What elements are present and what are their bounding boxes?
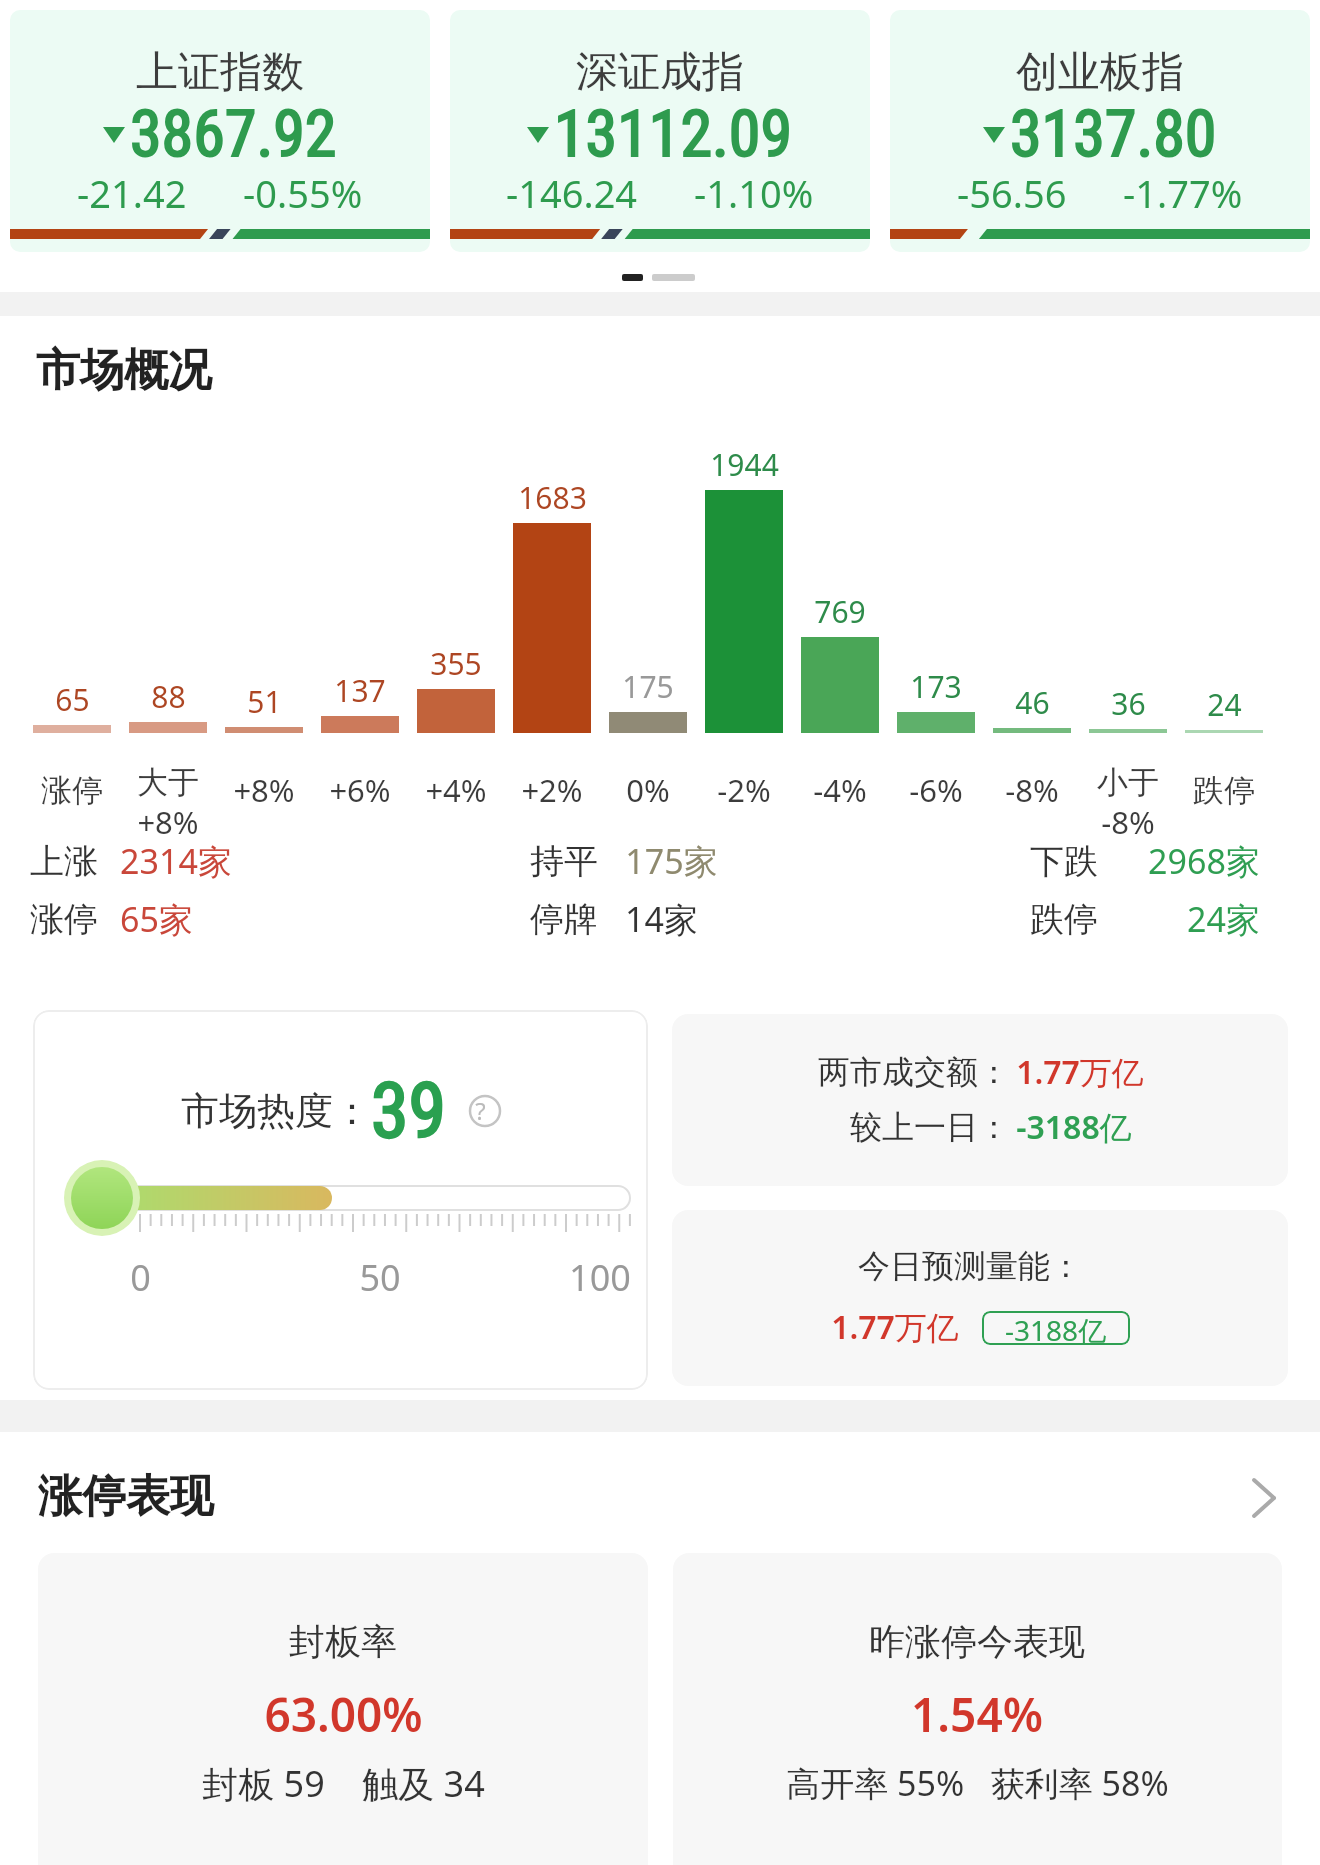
staticText: 小于 [1097,763,1159,802]
staticText: +6% [329,769,391,811]
staticText: 涨停表现 [38,1469,214,1524]
staticText: 39 [371,1066,447,1155]
staticText: 65家 [120,896,193,942]
staticText: 今日预测量能： [858,1246,1082,1286]
staticText: 较上一日： [850,1107,1010,1147]
staticText: 上涨 [30,840,98,883]
staticText: 14家 [625,896,698,942]
staticText: 上证指数 [136,46,304,99]
button[interactable] [450,10,870,252]
staticText: -3188亿 [1005,1311,1107,1345]
button[interactable] [890,10,1310,252]
staticText: 跌停 [1030,898,1098,941]
staticText: 50 [359,1253,401,1302]
staticText: 大于 [137,763,199,802]
staticText: 市场热度： [181,1087,371,1135]
staticText: 封板 59 触及 34 [202,1759,485,1808]
staticText: -1.10% [694,167,814,219]
staticText: 3137.80 [1010,97,1217,172]
staticText: 88 [151,676,186,717]
staticText: 36 [1111,683,1146,724]
staticText: -4% [813,769,867,811]
button[interactable] [10,10,430,252]
staticText: 创业板指 [1016,46,1184,99]
staticText: 769 [814,591,866,632]
staticText: ? [475,1094,486,1127]
staticText: 两市成交额： [818,1052,1010,1092]
staticText: 涨停 [41,771,103,810]
staticText: 涨停 [30,898,98,941]
staticText: 46 [1015,682,1050,723]
staticText: 63.00% [264,1683,423,1746]
staticText: 跌停 [1193,771,1255,810]
staticText: 175 [622,666,674,707]
staticText: 355 [430,643,482,684]
button[interactable] [672,1210,1288,1386]
button[interactable] [673,1553,1282,1865]
staticText: -21.42 [77,167,187,219]
staticText: 0% [626,769,670,811]
staticText: -1.77% [1123,167,1243,219]
staticText: -6% [909,769,963,811]
staticText: +8% [137,801,199,843]
staticText: 封板率 [289,1619,397,1664]
staticText: 1.54% [911,1683,1043,1746]
staticText: 深证成指 [576,46,744,99]
button[interactable] [672,1014,1288,1186]
staticText: -8% [1005,769,1059,811]
staticText: 3867.92 [130,97,337,172]
staticText: 1944 [710,444,779,485]
staticText: -56.56 [957,167,1067,219]
button[interactable] [33,1010,648,1390]
staticText: 24家 [1187,896,1260,942]
staticText: +8% [233,769,295,811]
staticText: +4% [425,769,487,811]
staticText: +2% [521,769,583,811]
staticText: 137 [334,670,386,711]
staticText: 0 [130,1253,151,1302]
staticText: 2314家 [120,838,232,884]
staticText: 高开率 55% 获利率 58% [786,1760,1169,1806]
staticText: 下跌 [1030,840,1098,883]
staticText: 175家 [625,838,718,884]
staticText: 昨涨停今表现 [869,1619,1085,1664]
staticText: 173 [910,666,962,707]
staticText: 2968家 [1148,838,1260,884]
staticText: 市场概况 [36,343,212,398]
staticText: 停牌 [530,898,598,941]
staticText: -3188亿 [1016,1105,1132,1149]
staticText: -0.55% [243,167,363,219]
button[interactable] [38,1553,648,1865]
staticText: -8% [1101,801,1155,843]
staticText: -146.24 [506,167,638,219]
staticText: 24 [1207,684,1242,725]
staticText: 13112.09 [554,97,793,172]
staticText: 100 [569,1253,631,1302]
staticText: 1.77万亿 [1016,1050,1144,1094]
staticText: 1683 [518,477,587,518]
staticText: 持平 [530,840,598,883]
staticText: 1.77万亿 [831,1305,959,1349]
staticText: 51 [247,681,282,722]
staticText: -2% [717,769,771,811]
staticText: 65 [55,679,90,720]
